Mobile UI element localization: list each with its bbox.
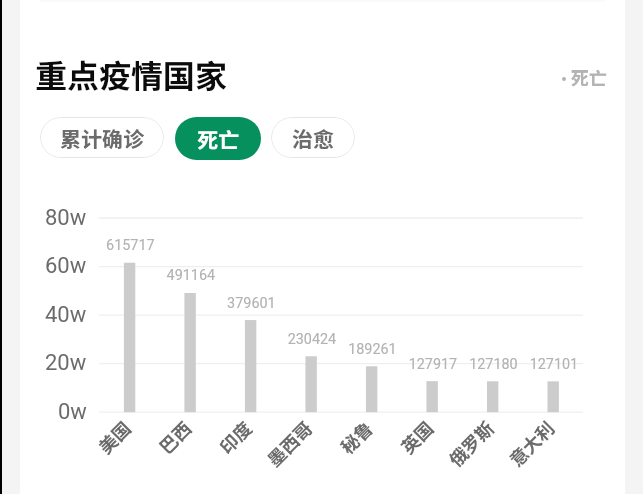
button[interactable]: 累计确诊 bbox=[40, 117, 164, 158]
staticText: 治愈 bbox=[292, 123, 334, 153]
button[interactable]: 治愈 bbox=[271, 117, 355, 158]
button[interactable]: 死亡 bbox=[175, 117, 261, 160]
other: 死亡 series colour bbox=[562, 77, 566, 81]
other: 死亡 bar chart by country bbox=[20, 0, 625, 494]
staticText: 累计确诊 bbox=[60, 123, 144, 153]
staticText: 死亡 bbox=[571, 64, 607, 90]
staticText: 死亡 bbox=[197, 124, 239, 154]
button[interactable]: 死亡 series colour bbox=[556, 58, 613, 96]
staticText: 重点疫情国家 bbox=[35, 51, 228, 97]
